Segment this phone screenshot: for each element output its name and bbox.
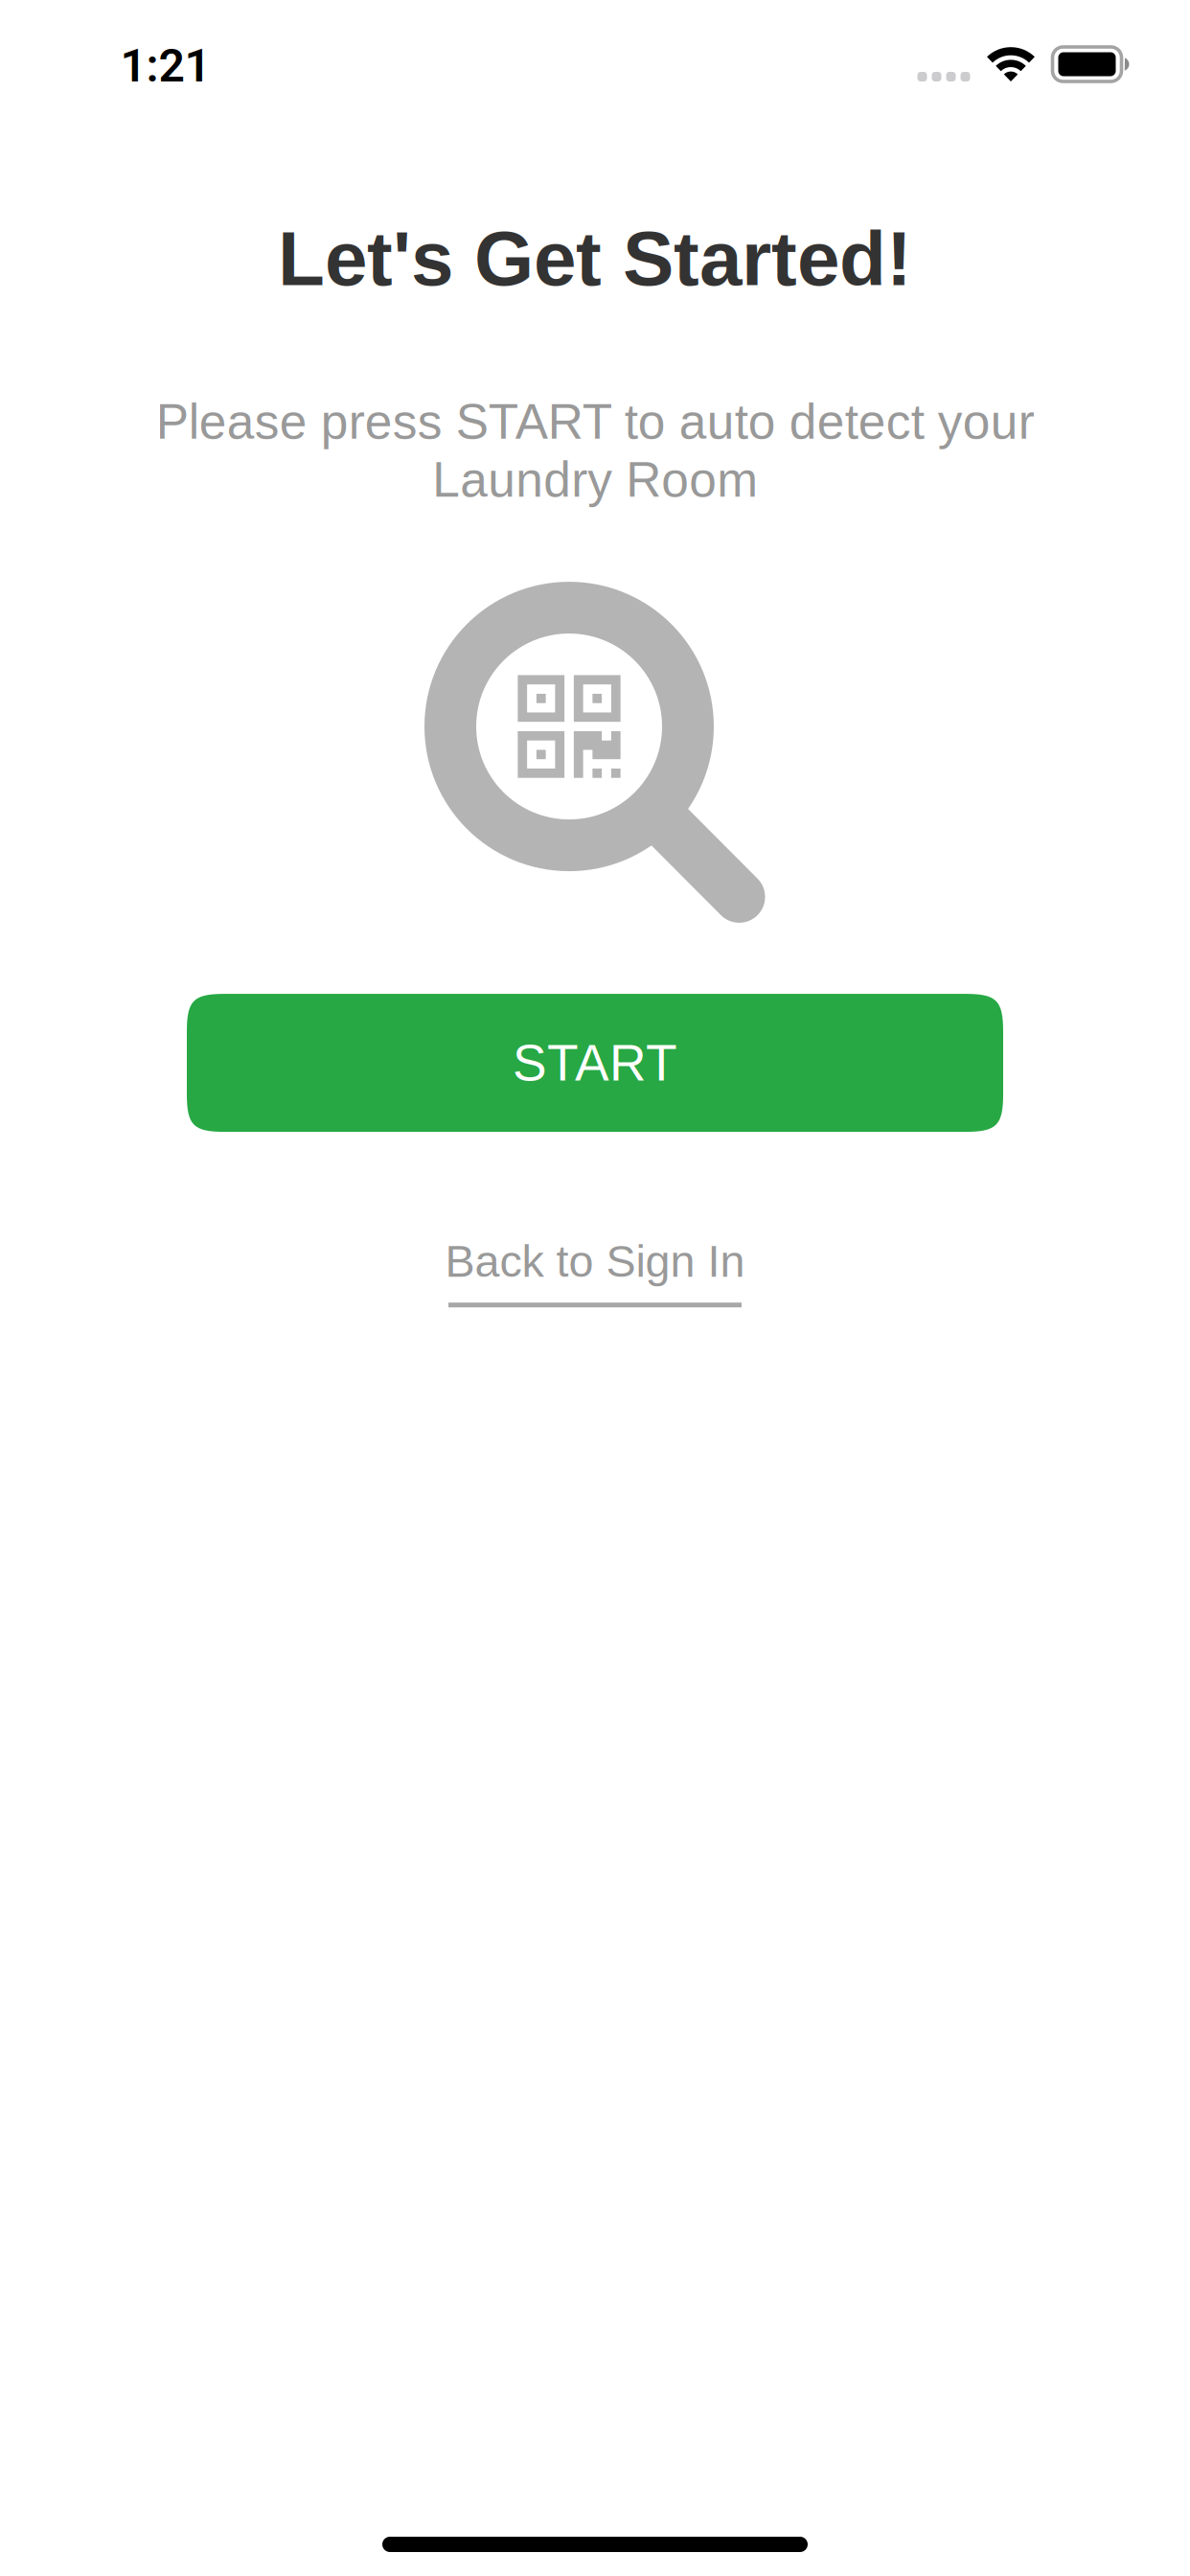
button[interactable]: Back to Sign In	[445, 1236, 745, 1307]
staticText: 1:21	[120, 39, 210, 93]
staticText: Please press START to auto detect your L…	[156, 394, 1034, 507]
staticText: START	[513, 1034, 677, 1091]
staticText: Let's Get Started!	[278, 216, 912, 301]
staticText: Back to Sign In	[445, 1236, 745, 1286]
button[interactable]: START	[187, 994, 1003, 1132]
